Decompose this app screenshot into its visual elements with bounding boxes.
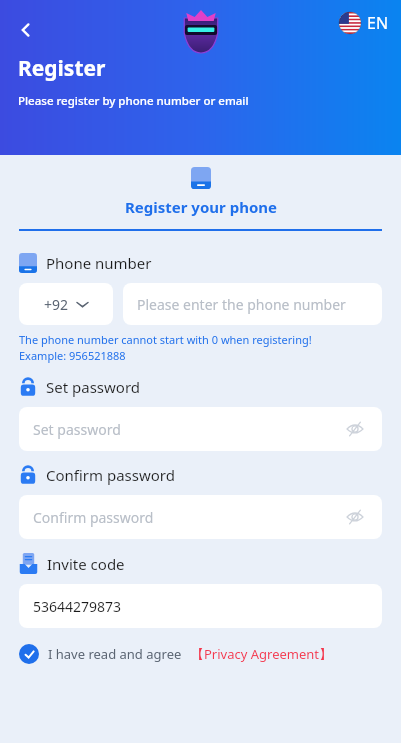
staticText: Set password — [46, 377, 141, 397]
button[interactable]: 92GLORY logo — [174, 4, 228, 54]
staticText: Phone number — [46, 253, 152, 273]
button[interactable]: Confirm password — [19, 495, 382, 539]
button[interactable]: EN — [339, 12, 389, 34]
button[interactable]: Register your phone — [125, 167, 277, 217]
button[interactable]: Toggle password visibility — [342, 416, 368, 442]
staticText: Register — [18, 54, 106, 83]
staticText: Invite code — [47, 554, 125, 574]
staticText: Confirm password — [46, 465, 175, 485]
staticText: Set password — [33, 420, 121, 439]
staticText: +92 — [44, 295, 69, 314]
button[interactable]: 53644279873 — [19, 584, 382, 628]
staticText: Example: 956521888 — [19, 348, 126, 363]
staticText: Please enter the phone number — [137, 295, 346, 314]
staticText: The phone number cannot start with 0 whe… — [19, 332, 312, 347]
staticText: 53644279873 — [33, 597, 122, 616]
staticText: I have read and agree — [48, 645, 182, 663]
button[interactable]: Please enter the phone number — [123, 283, 382, 325]
staticText: 【Privacy Agreement】 — [191, 645, 333, 663]
staticText: Confirm password — [33, 508, 154, 527]
button[interactable]: 【Privacy Agreement】 — [191, 645, 333, 663]
button[interactable]: Set password — [19, 407, 382, 451]
button[interactable]: Back — [8, 12, 44, 48]
staticText: Register your phone — [125, 197, 277, 217]
staticText: Please register by phone number or email — [18, 93, 249, 109]
button[interactable]: Toggle password visibility — [342, 504, 368, 530]
button[interactable]: Agree checkbox — [19, 644, 39, 664]
staticText: EN — [367, 12, 389, 34]
button[interactable]: +92 — [19, 283, 113, 325]
